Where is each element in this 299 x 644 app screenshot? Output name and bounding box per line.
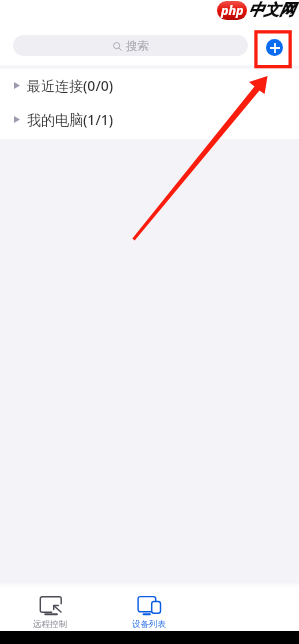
staticText: 最近连接(0/0) (27, 76, 114, 95)
staticText: 我的电脑(1/1) (27, 110, 114, 129)
staticText: 远程控制 (33, 619, 67, 630)
button[interactable]: 搜索 (13, 35, 248, 56)
staticText: php (221, 2, 244, 19)
button[interactable]: Add device (266, 39, 283, 56)
button[interactable]: 设备列表 (99, 588, 199, 631)
button[interactable]: 我的电脑(1/1) (0, 104, 299, 135)
staticText: 搜索 (126, 39, 149, 53)
button[interactable]: 远程控制 (0, 588, 99, 631)
staticText: 设备列表 (132, 619, 166, 630)
button[interactable]: 最近连接(0/0) (0, 70, 299, 101)
staticText: 中文网 (248, 0, 295, 20)
